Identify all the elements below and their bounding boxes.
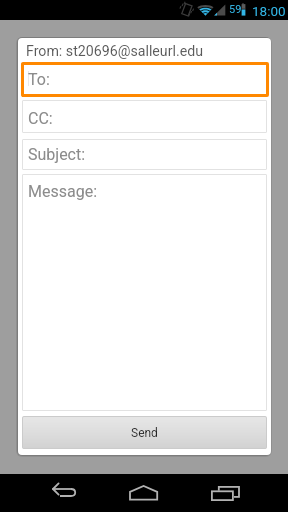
staticText: Send (131, 426, 158, 440)
button[interactable]: To: (22, 62, 267, 96)
staticText: From: st20696@salleurl.edu (26, 43, 204, 60)
button[interactable]: Subject: (22, 139, 267, 170)
staticText: Message: (28, 182, 98, 201)
staticText: Subject: (28, 145, 86, 164)
button[interactable]: Recents (197, 474, 253, 512)
button[interactable]: CC: (22, 100, 267, 133)
button[interactable]: Back (36, 474, 92, 512)
staticText: 18:00 (252, 3, 286, 19)
staticText: To: (28, 70, 50, 89)
button[interactable]: Message: (22, 174, 267, 411)
button[interactable]: Send (22, 416, 267, 449)
button[interactable]: Home (116, 474, 172, 512)
staticText: 59 (229, 3, 242, 16)
staticText: CC: (28, 109, 53, 128)
